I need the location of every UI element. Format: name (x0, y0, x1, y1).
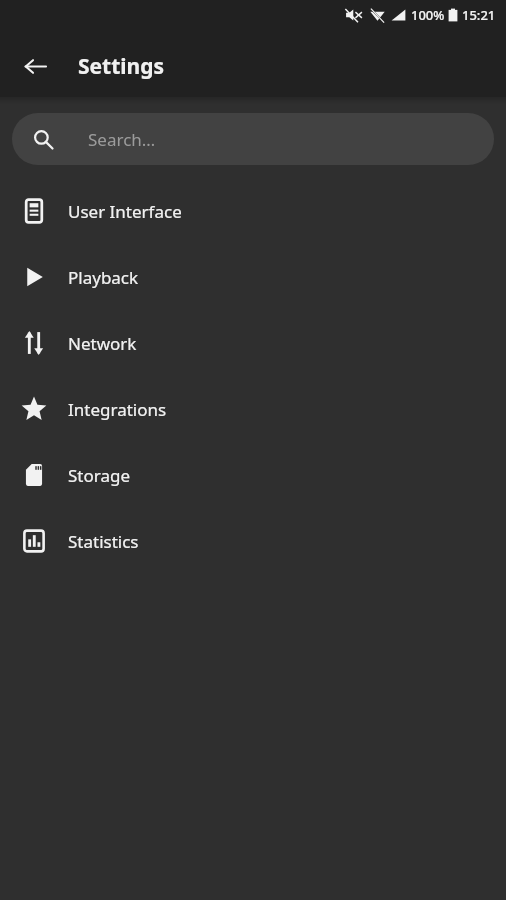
button[interactable]: Statistics (0, 508, 506, 574)
button[interactable]: Back (11, 42, 59, 90)
staticText: Network (68, 332, 137, 355)
staticText: 15:21 (462, 6, 496, 24)
button[interactable]: User Interface (0, 178, 506, 244)
button[interactable]: Search… (12, 113, 494, 165)
staticText: Storage (68, 464, 131, 487)
staticText: User Interface (68, 200, 182, 223)
button[interactable]: Playback (0, 244, 506, 310)
button[interactable]: Storage (0, 442, 506, 508)
button[interactable]: Integrations (0, 376, 506, 442)
staticText: Integrations (68, 398, 167, 421)
staticText: Statistics (68, 530, 139, 553)
button[interactable]: Network (0, 310, 506, 376)
staticText: Settings (78, 52, 165, 81)
staticText: Playback (68, 266, 139, 289)
staticText: Search… (88, 128, 156, 151)
staticText: 100% (411, 6, 445, 24)
